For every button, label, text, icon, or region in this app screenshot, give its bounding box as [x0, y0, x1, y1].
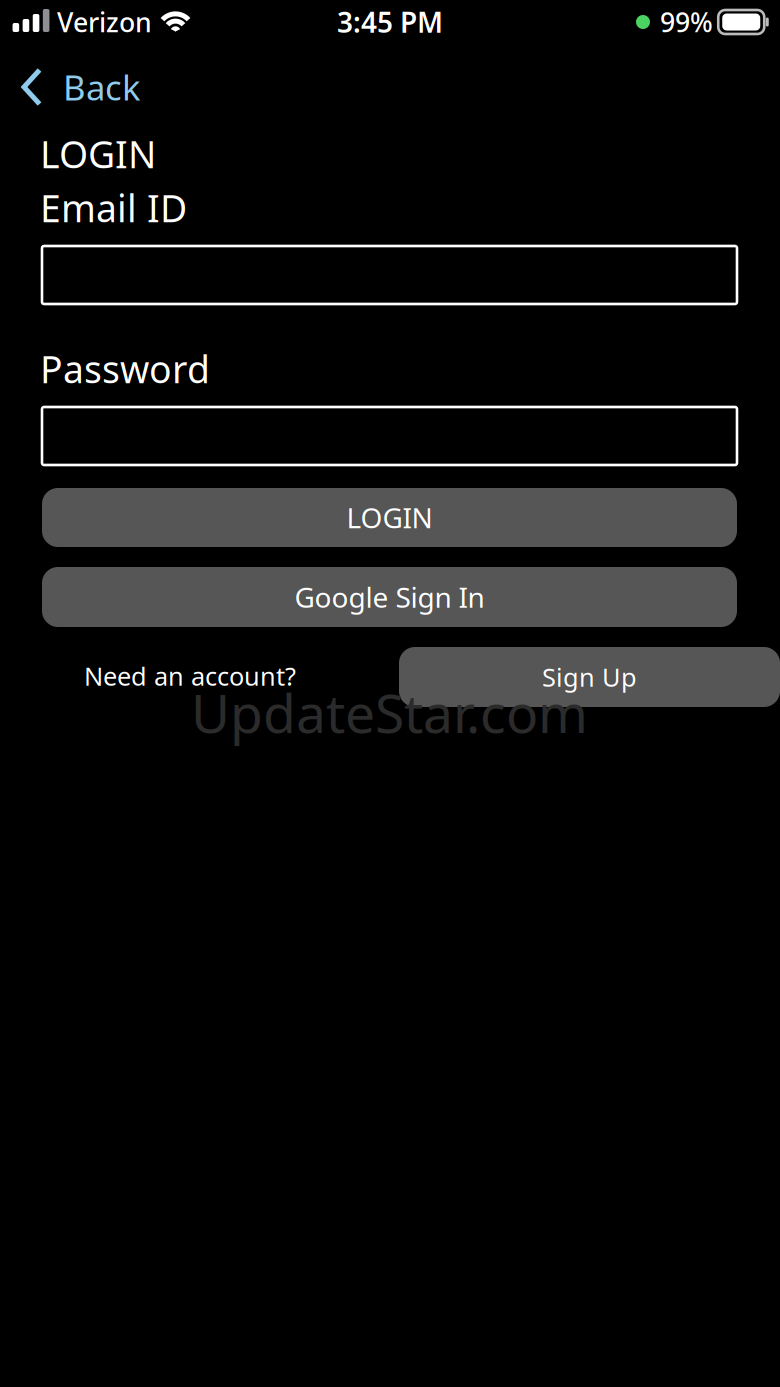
button[interactable]: LOGIN	[42, 488, 737, 547]
staticText: UpdateStar.com	[191, 677, 588, 748]
textField[interactable]: Email ID	[42, 246, 737, 304]
button[interactable]: Sign Up	[399, 647, 780, 707]
staticText: Back	[63, 64, 141, 110]
staticText: LOGIN	[40, 129, 156, 179]
staticText: Sign Up	[542, 660, 637, 694]
staticText: LOGIN	[346, 499, 432, 536]
staticText: Password	[40, 344, 210, 394]
staticText: 3:45 PM	[337, 3, 443, 41]
button[interactable]: Need an account?	[84, 659, 296, 693]
staticText: Verizon	[57, 4, 152, 40]
staticText: 99%	[660, 4, 713, 40]
staticText: Email ID	[40, 183, 187, 233]
button[interactable]: Back	[21, 64, 141, 110]
button[interactable]: Google Sign In	[42, 567, 737, 627]
secureTextField[interactable]: Password	[42, 407, 737, 465]
staticText: Google Sign In	[294, 578, 484, 616]
staticText: Need an account?	[84, 659, 296, 693]
